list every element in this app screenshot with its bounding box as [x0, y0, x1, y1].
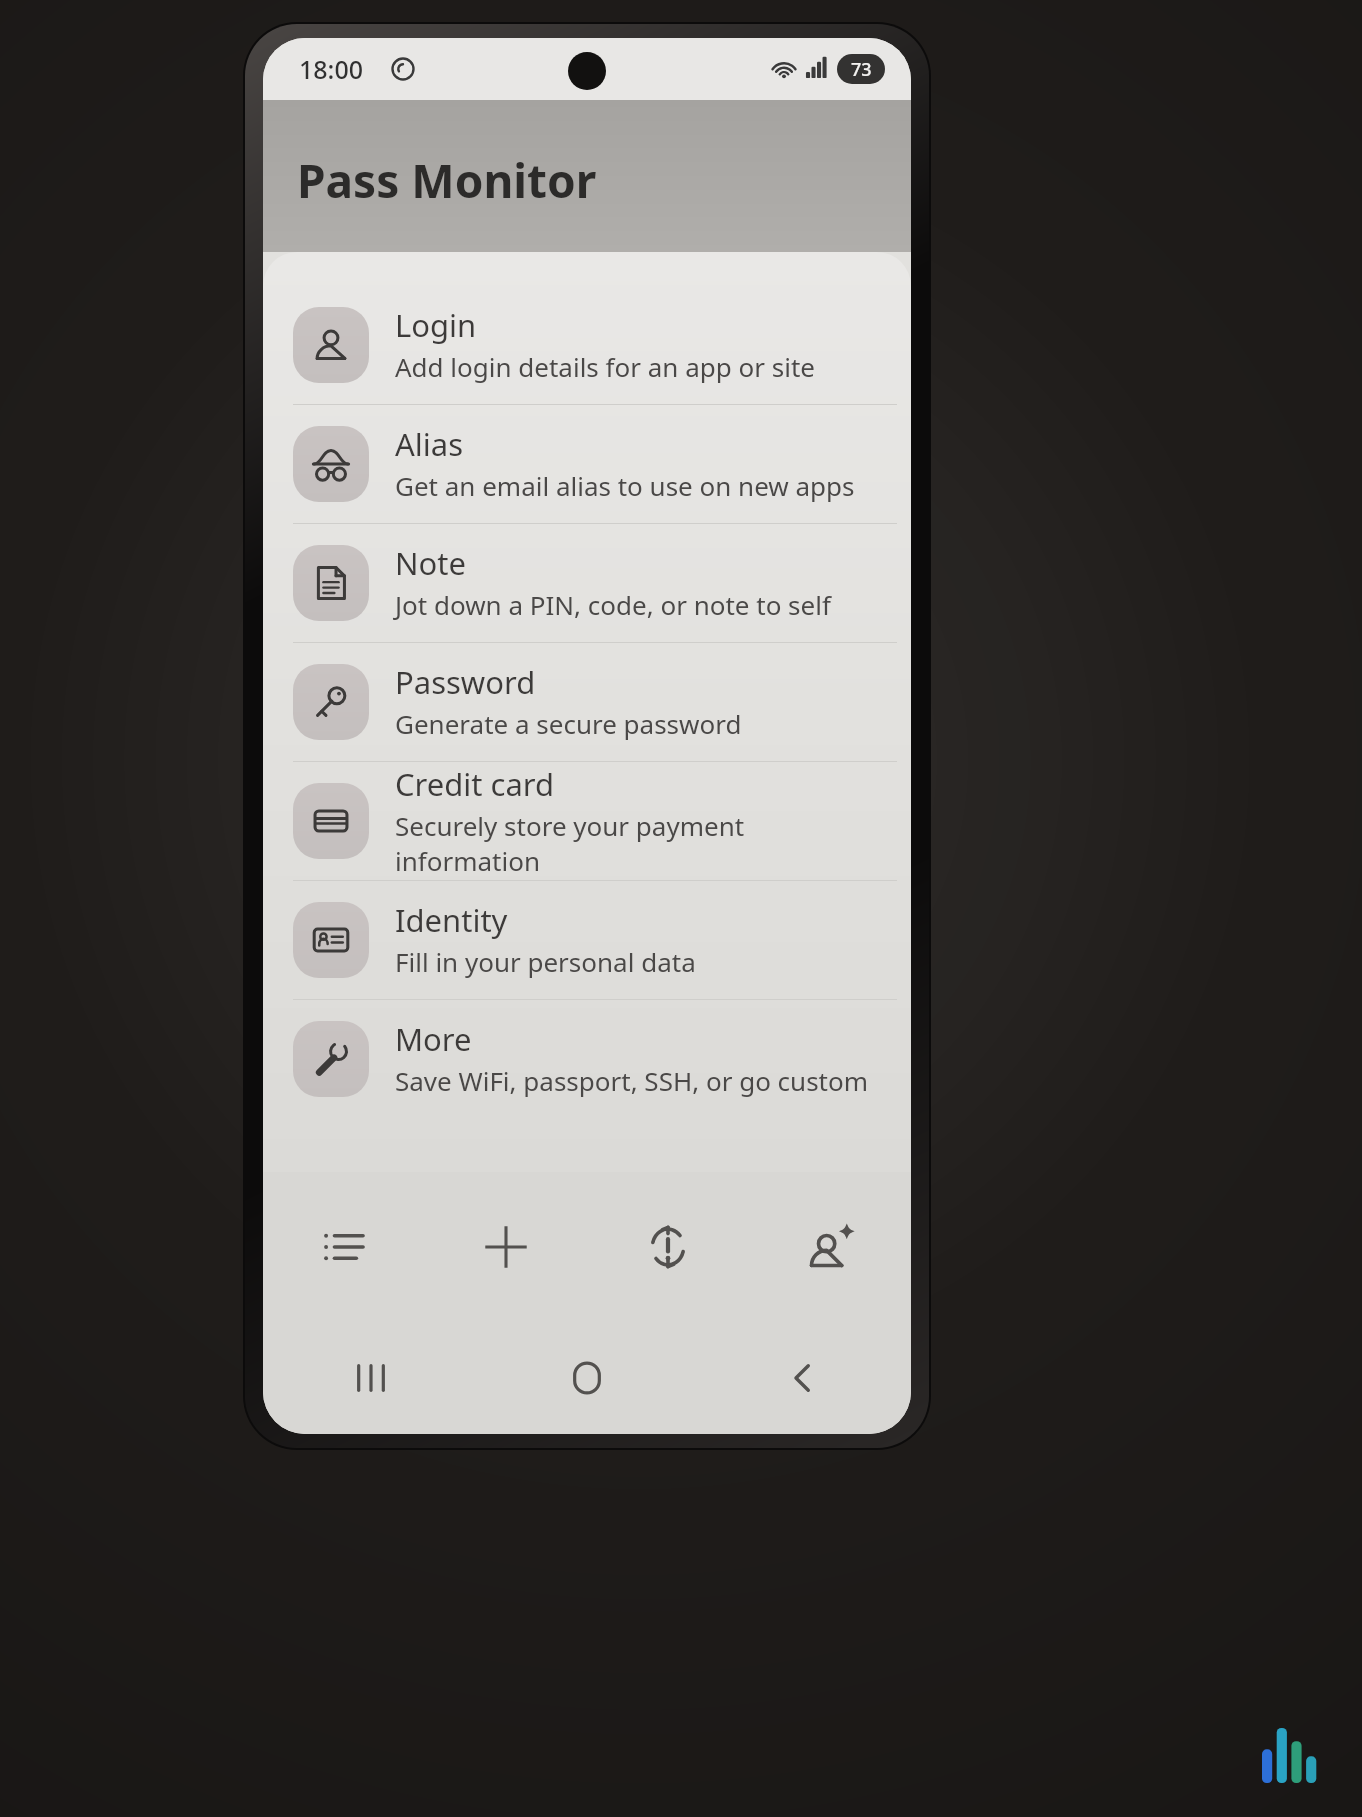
staticText: Generate a secure password — [395, 706, 742, 741]
staticText: Pass Monitor — [297, 149, 597, 212]
staticText: Credit card — [395, 763, 555, 805]
staticText: Identity — [395, 899, 508, 941]
button[interactable]: Add — [425, 1172, 587, 1322]
staticText: Fill in your personal data — [395, 944, 696, 979]
button[interactable]: List — [263, 1172, 425, 1322]
button[interactable]: Password — [263, 643, 911, 761]
button[interactable]: More — [263, 1000, 911, 1118]
button[interactable]: Note — [263, 524, 911, 642]
button[interactable]: Account — [749, 1172, 911, 1322]
staticText: Alias — [395, 423, 464, 465]
staticText: 73 — [851, 57, 872, 82]
staticText: More — [395, 1018, 472, 1060]
staticText: Note — [395, 542, 466, 584]
staticText: Save WiFi, passport, SSH, or go custom — [395, 1063, 869, 1098]
staticText: Securely store your payment information — [395, 808, 891, 878]
staticText: Get an email alias to use on new apps — [395, 468, 855, 503]
button[interactable]: Login — [263, 286, 911, 404]
button[interactable]: Alias — [263, 405, 911, 523]
staticText: Login — [395, 304, 477, 346]
button[interactable]: Credit card — [263, 762, 911, 880]
staticText: Password — [395, 661, 536, 703]
button[interactable]: Security check — [587, 1172, 749, 1322]
staticText: 18:00 — [299, 52, 364, 86]
button[interactable]: Identity — [263, 881, 911, 999]
staticText: Jot down a PIN, code, or note to self — [395, 587, 831, 622]
staticText: Add login details for an app or site — [395, 349, 815, 384]
